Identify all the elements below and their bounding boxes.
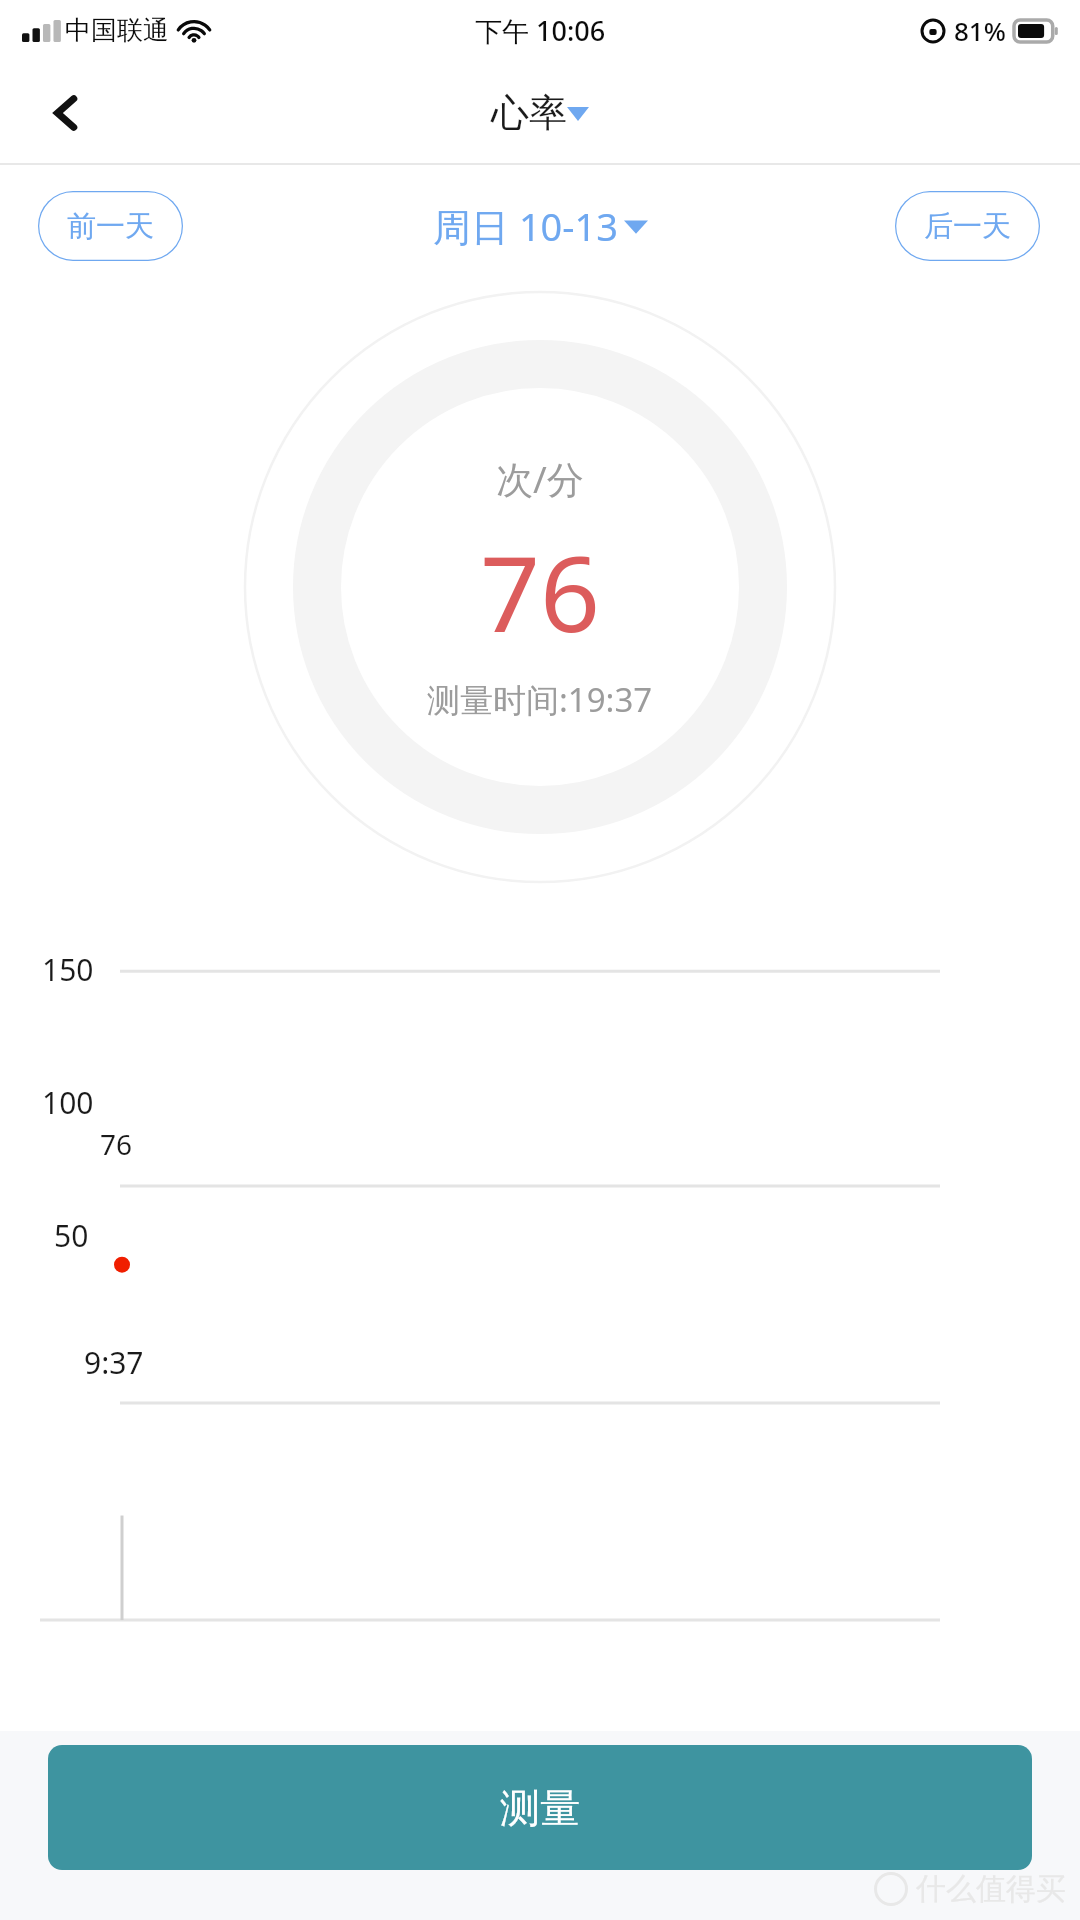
staticText: 50: [54, 1215, 89, 1256]
staticText: 下午 10:06: [475, 12, 606, 49]
staticText: 周日 10-13: [433, 200, 619, 252]
button[interactable]: 测量: [48, 1745, 1032, 1870]
staticText: 100: [42, 1082, 94, 1123]
staticText: 后一天: [924, 208, 1011, 245]
staticText: 什么值得买: [916, 1870, 1066, 1908]
button[interactable]: 周日 10-13: [433, 200, 648, 252]
staticText: 前一天: [67, 208, 154, 245]
staticText: 次/分: [496, 453, 584, 504]
staticText: 测量时间:19:37: [427, 677, 653, 722]
staticText: 76: [480, 520, 601, 663]
staticText: 9:37: [84, 1342, 144, 1383]
button[interactable]: Back: [28, 74, 106, 152]
staticText: 150: [42, 949, 94, 990]
staticText: 81%: [954, 13, 1006, 48]
button[interactable]: 前一天: [38, 191, 183, 261]
button[interactable]: 心率: [491, 89, 589, 137]
staticText: 76: [100, 1125, 133, 1163]
button[interactable]: 后一天: [895, 191, 1040, 261]
staticText: 心率: [491, 89, 567, 137]
staticText: 测量: [500, 1783, 580, 1833]
staticText: 中国联通: [65, 14, 169, 47]
